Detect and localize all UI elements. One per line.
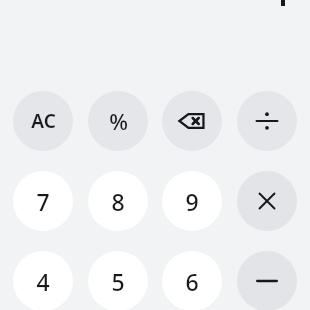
button[interactable]: 8	[88, 171, 148, 231]
staticText: 8	[111, 186, 125, 217]
button[interactable]: 4	[13, 251, 73, 310]
button[interactable]: Divide	[237, 91, 297, 151]
staticText: %	[109, 106, 128, 136]
staticText: AC	[31, 108, 56, 134]
staticText: 6	[185, 266, 199, 297]
button[interactable]: 7	[13, 171, 73, 231]
staticText: 9	[185, 186, 199, 217]
button[interactable]: 9	[162, 171, 222, 231]
button[interactable]: Subtract	[237, 251, 297, 310]
button[interactable]: Backspace	[162, 91, 222, 151]
button[interactable]: 6	[162, 251, 222, 310]
button[interactable]: AC	[13, 91, 73, 151]
button[interactable]: Multiply	[237, 171, 297, 231]
staticText: 7	[36, 186, 50, 217]
button[interactable]: %	[88, 91, 148, 151]
button[interactable]: 5	[88, 251, 148, 310]
staticText: 4	[36, 266, 50, 297]
staticText: 5	[111, 266, 125, 297]
